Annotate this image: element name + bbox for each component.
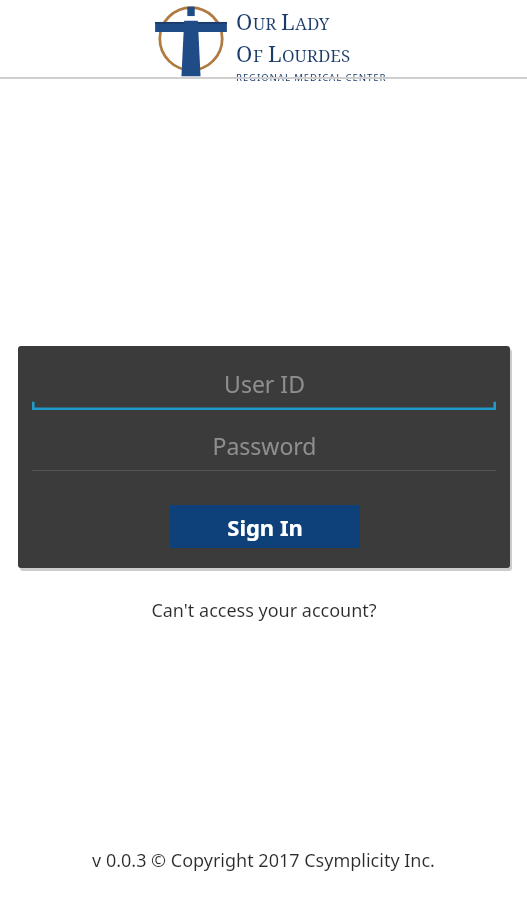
staticText: v 0.0.3 © Copyright 2017 Csymplicity Inc… — [92, 848, 435, 873]
staticText: OURDES — [282, 44, 351, 67]
staticText: Password — [212, 430, 317, 461]
button[interactable]: Can't access your account? — [143, 594, 385, 627]
button[interactable]: User ID — [18, 366, 510, 410]
staticText: L — [268, 38, 282, 68]
staticText: UR — [253, 12, 281, 35]
staticText: REGIONAL MEDICAL CENTER — [236, 71, 387, 83]
staticText: Can't access your account? — [151, 598, 377, 623]
staticText: ADY — [295, 12, 330, 35]
staticText: Sign In — [227, 512, 303, 542]
staticText: L — [281, 6, 295, 36]
staticText: F — [253, 44, 268, 67]
staticText: O — [236, 38, 253, 68]
button[interactable]: Sign In — [170, 505, 360, 548]
staticText: O — [236, 6, 253, 36]
staticText: User ID — [224, 368, 305, 399]
button[interactable]: Password — [18, 428, 510, 472]
